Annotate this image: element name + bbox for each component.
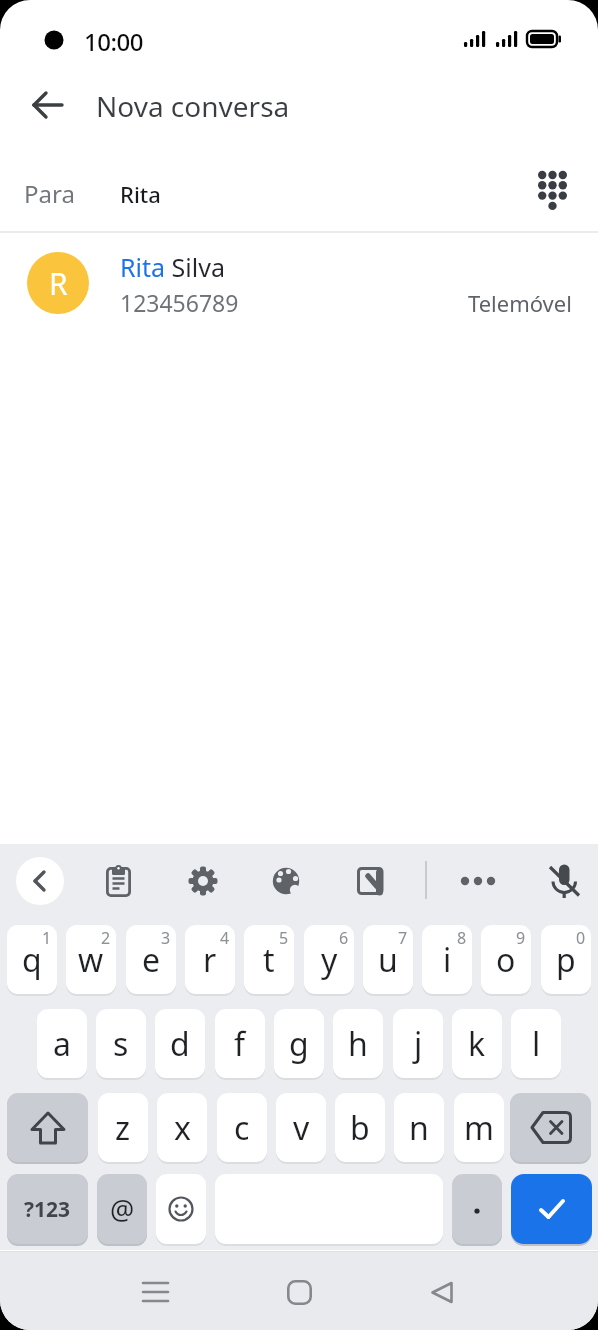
button[interactable]: [156, 1174, 206, 1244]
staticText: 9: [516, 927, 526, 949]
button[interactable]: w: [66, 925, 116, 994]
button[interactable]: y: [304, 925, 354, 994]
button[interactable]: r: [185, 925, 235, 994]
staticText: a: [53, 1022, 71, 1066]
staticText: k: [468, 1022, 486, 1066]
staticText: 10:00: [84, 25, 143, 58]
staticText: Para: [24, 177, 75, 210]
staticText: m: [464, 1106, 494, 1150]
button[interactable]: n: [394, 1093, 444, 1162]
button[interactable]: u: [363, 925, 413, 994]
staticText: l: [532, 1022, 541, 1066]
button[interactable]: [349, 858, 395, 904]
button[interactable]: [416, 1267, 466, 1317]
staticText: 1: [42, 927, 52, 949]
button[interactable]: s: [96, 1009, 146, 1078]
button[interactable]: [131, 1267, 181, 1317]
staticText: f: [234, 1022, 246, 1066]
button[interactable]: v: [276, 1093, 326, 1162]
staticText: v: [293, 1106, 310, 1150]
staticText: R: [49, 263, 68, 304]
button[interactable]: g: [274, 1009, 324, 1078]
staticText: 0: [576, 927, 586, 949]
staticText: Nova conversa: [96, 87, 290, 125]
staticText: u: [378, 938, 398, 982]
button[interactable]: [511, 1174, 592, 1244]
button[interactable]: [263, 858, 309, 904]
staticText: r: [203, 938, 217, 982]
staticText: j: [414, 1022, 423, 1066]
staticText: e: [142, 938, 161, 982]
button[interactable]: j: [393, 1009, 443, 1078]
button[interactable]: [20, 78, 76, 134]
staticText: Telemóvel: [468, 288, 572, 318]
button[interactable]: e: [126, 925, 176, 994]
button[interactable]: [510, 1093, 591, 1162]
staticText: z: [115, 1106, 131, 1150]
staticText: t: [263, 938, 275, 982]
staticText: Rita Silva: [120, 250, 225, 284]
button[interactable]: [7, 1093, 88, 1162]
button[interactable]: x: [157, 1093, 207, 1162]
button[interactable]: f: [215, 1009, 265, 1078]
staticText: s: [113, 1022, 129, 1066]
staticText: i: [443, 938, 452, 982]
button[interactable]: a: [37, 1009, 87, 1078]
button[interactable]: i: [422, 925, 472, 994]
button[interactable]: [180, 858, 226, 904]
button[interactable]: ?123: [7, 1174, 88, 1244]
staticText: x: [174, 1106, 191, 1150]
button[interactable]: q: [7, 925, 57, 994]
staticText: g: [289, 1022, 309, 1066]
button[interactable]: [452, 1174, 502, 1244]
button[interactable]: l: [511, 1009, 561, 1078]
button[interactable]: c: [217, 1093, 267, 1162]
staticText: 123456789: [120, 287, 239, 318]
button[interactable]: [16, 857, 64, 905]
staticText: 6: [339, 927, 349, 949]
staticText: c: [234, 1106, 250, 1150]
staticText: d: [170, 1022, 190, 1066]
staticText: Rita: [120, 179, 161, 209]
staticText: b: [350, 1106, 370, 1150]
staticText: n: [409, 1106, 429, 1150]
button[interactable]: m: [454, 1093, 504, 1162]
button[interactable]: [524, 160, 580, 220]
staticText: 3: [161, 927, 171, 949]
staticText: @: [110, 1191, 135, 1228]
button[interactable]: o: [481, 925, 531, 994]
staticText: 5: [279, 927, 289, 949]
button[interactable]: t: [244, 925, 294, 994]
button[interactable]: b: [335, 1093, 385, 1162]
staticText: q: [22, 938, 42, 982]
button[interactable]: h: [333, 1009, 383, 1078]
staticText: 4: [220, 927, 230, 949]
button[interactable]: [274, 1267, 324, 1317]
button[interactable]: [541, 858, 587, 904]
staticText: y: [321, 938, 338, 982]
staticText: 8: [457, 927, 467, 949]
button[interactable]: p: [541, 925, 591, 994]
button[interactable]: d: [155, 1009, 205, 1078]
button[interactable]: R: [0, 233, 598, 333]
staticText: ?123: [24, 1195, 71, 1224]
staticText: p: [556, 938, 576, 982]
button[interactable]: @: [97, 1174, 147, 1244]
button[interactable]: [95, 858, 141, 904]
button[interactable]: z: [98, 1093, 148, 1162]
staticText: 2: [101, 927, 111, 949]
button[interactable]: [455, 858, 501, 904]
staticText: o: [496, 938, 516, 982]
staticText: h: [348, 1022, 368, 1066]
staticText: w: [78, 938, 104, 982]
staticText: 7: [398, 927, 408, 949]
button[interactable]: k: [452, 1009, 502, 1078]
